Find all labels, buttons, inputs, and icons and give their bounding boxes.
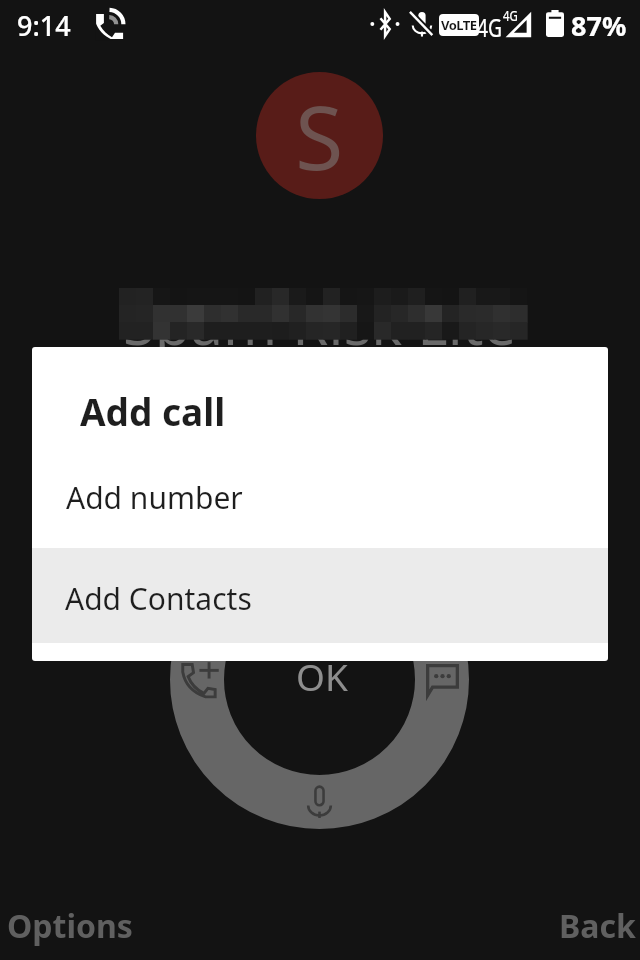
button[interactable]: Back	[549, 900, 640, 954]
staticText: 4G	[477, 9, 502, 44]
staticText: 9:14	[17, 7, 71, 44]
staticText: Back	[559, 904, 636, 948]
button[interactable]: Add call	[176, 661, 221, 700]
staticText: Spam Risk Lite	[123, 283, 517, 362]
staticText: Options	[7, 904, 133, 948]
staticText: OK	[296, 651, 348, 701]
staticText: VoLTE	[441, 16, 477, 34]
button[interactable]: Options	[0, 900, 143, 954]
staticText: S	[295, 76, 344, 196]
button[interactable]: Message	[426, 664, 459, 697]
button[interactable]: Mute	[306, 786, 333, 818]
staticText: Add call	[80, 386, 226, 436]
button[interactable]: Add Contacts	[32, 548, 608, 643]
staticText: 87%	[571, 7, 627, 44]
button[interactable]: Add number	[32, 450, 608, 548]
staticText: 4G	[503, 5, 518, 25]
staticText: Add number	[66, 477, 243, 518]
staticText: Add Contacts	[65, 578, 252, 619]
